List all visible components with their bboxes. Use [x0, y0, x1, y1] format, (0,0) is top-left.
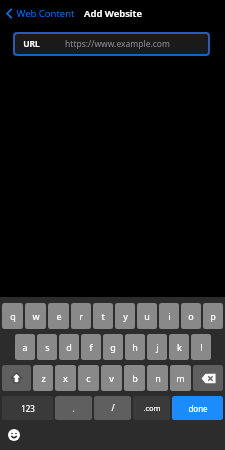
button[interactable]: t — [93, 303, 113, 329]
button[interactable]: l — [191, 334, 211, 360]
staticText: h — [132, 341, 138, 353]
staticText: r — [79, 310, 83, 322]
staticText: t — [101, 310, 105, 322]
staticText: e — [56, 310, 62, 322]
button[interactable]: b — [124, 365, 145, 391]
button[interactable]: s — [37, 334, 57, 360]
button[interactable]: Web Content — [4, 4, 77, 23]
staticText: . — [72, 403, 75, 414]
button[interactable]: e — [48, 303, 69, 329]
staticText: c — [86, 372, 91, 384]
staticText: p — [210, 310, 216, 322]
staticText: done — [188, 403, 208, 414]
button[interactable]: / — [94, 396, 131, 420]
button[interactable]: j — [147, 334, 167, 360]
staticText: Web Content — [16, 7, 75, 20]
staticText: g — [110, 341, 116, 353]
staticText: d — [66, 341, 72, 353]
staticText: x — [63, 372, 68, 384]
staticText: z — [41, 372, 46, 384]
button[interactable]: done — [172, 396, 223, 420]
button[interactable]: p — [203, 303, 223, 329]
button[interactable]: h — [125, 334, 145, 360]
button[interactable]: Backspace — [193, 365, 223, 391]
staticText: q — [10, 310, 16, 322]
button[interactable]: z — [33, 365, 53, 391]
button[interactable]: w — [25, 303, 46, 329]
button[interactable]: 123 — [2, 396, 53, 420]
staticText: s — [45, 341, 50, 353]
staticText: / — [111, 402, 115, 414]
staticText: 123 — [21, 403, 35, 414]
staticText: f — [89, 341, 93, 353]
staticText: a — [22, 341, 28, 353]
button[interactable]: Emoji keyboard — [6, 427, 22, 443]
button[interactable]: URL — [15, 34, 208, 54]
staticText: v — [109, 372, 114, 384]
staticText: w — [32, 310, 40, 322]
staticText: l — [200, 341, 203, 353]
staticText: https://www.example.com — [65, 38, 170, 50]
staticText: .com — [143, 403, 161, 413]
button[interactable]: k — [169, 334, 189, 360]
staticText: m — [176, 372, 185, 384]
button[interactable]: o — [181, 303, 201, 329]
staticText: j — [156, 341, 159, 353]
staticText: k — [177, 341, 182, 353]
staticText: URL — [23, 38, 40, 50]
staticText: y — [123, 310, 128, 322]
staticText: b — [132, 372, 138, 384]
button[interactable]: f — [81, 334, 101, 360]
staticText: n — [155, 372, 161, 384]
staticText: Add Website — [84, 7, 142, 20]
staticText: u — [144, 310, 150, 322]
staticText: i — [168, 310, 171, 322]
button[interactable]: x — [55, 365, 76, 391]
button[interactable]: i — [159, 303, 179, 329]
button[interactable]: . — [55, 396, 92, 420]
button[interactable]: n — [147, 365, 168, 391]
button[interactable]: a — [15, 334, 35, 360]
staticText: o — [188, 310, 194, 322]
button[interactable]: m — [170, 365, 191, 391]
button[interactable]: Shift — [2, 365, 31, 391]
button[interactable]: r — [71, 303, 91, 329]
button[interactable]: g — [103, 334, 123, 360]
button[interactable]: q — [2, 303, 23, 329]
button[interactable]: .com — [133, 396, 170, 420]
button[interactable]: y — [115, 303, 135, 329]
button[interactable]: v — [101, 365, 122, 391]
button[interactable]: u — [137, 303, 157, 329]
button[interactable]: c — [78, 365, 99, 391]
button[interactable]: d — [59, 334, 79, 360]
